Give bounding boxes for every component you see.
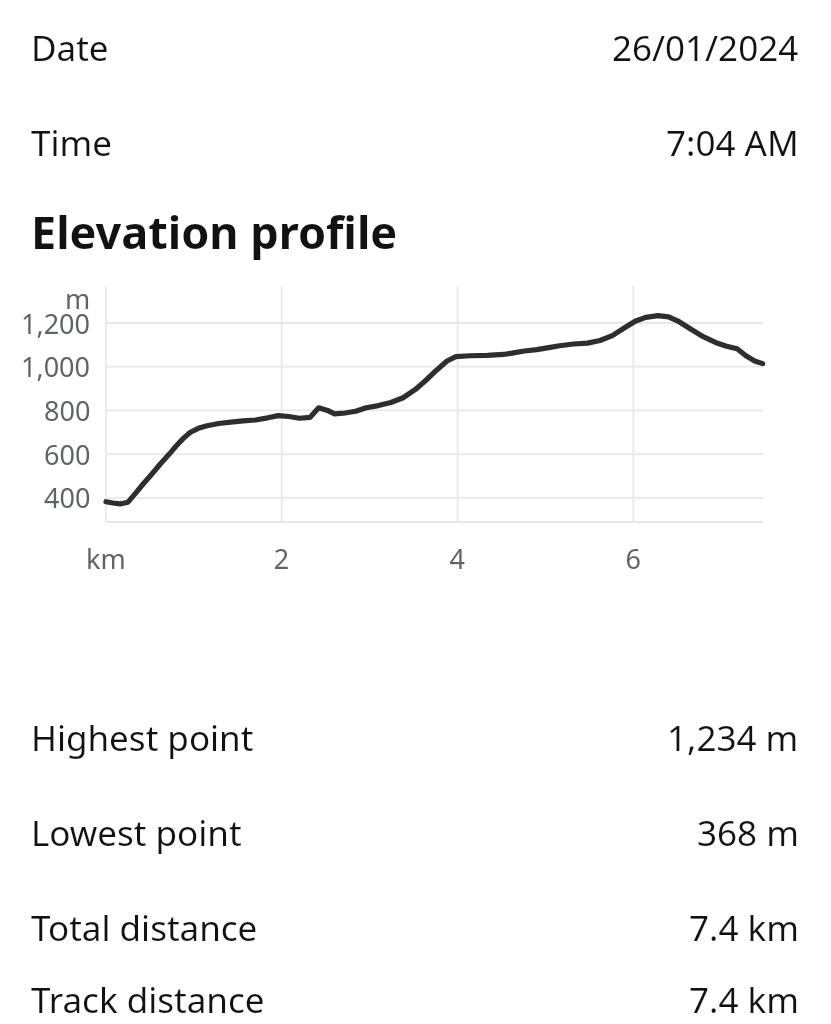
button[interactable]: Lowest point [0, 785, 831, 880]
staticText: 7:04 AM [666, 119, 799, 167]
staticText: Track distance [31, 976, 265, 1024]
staticText: 7.4 km [689, 976, 799, 1024]
staticText: 1,234 m [667, 714, 799, 762]
staticText: 26/01/2024 [612, 24, 799, 72]
staticText: Lowest point [31, 809, 242, 857]
button[interactable]: Highest point [0, 690, 831, 785]
button[interactable]: Total distance [0, 880, 831, 975]
staticText: Date [31, 24, 109, 72]
staticText: Time [31, 119, 112, 167]
button[interactable]: Track distance [0, 975, 831, 1024]
staticText: 7.4 km [689, 904, 799, 952]
staticText: 368 m [697, 809, 799, 857]
staticText: Elevation profile [31, 201, 398, 262]
button[interactable]: Date [0, 0, 831, 96]
staticText: Highest point [31, 714, 254, 762]
staticText: Total distance [31, 904, 258, 952]
button[interactable]: Time [0, 96, 831, 190]
